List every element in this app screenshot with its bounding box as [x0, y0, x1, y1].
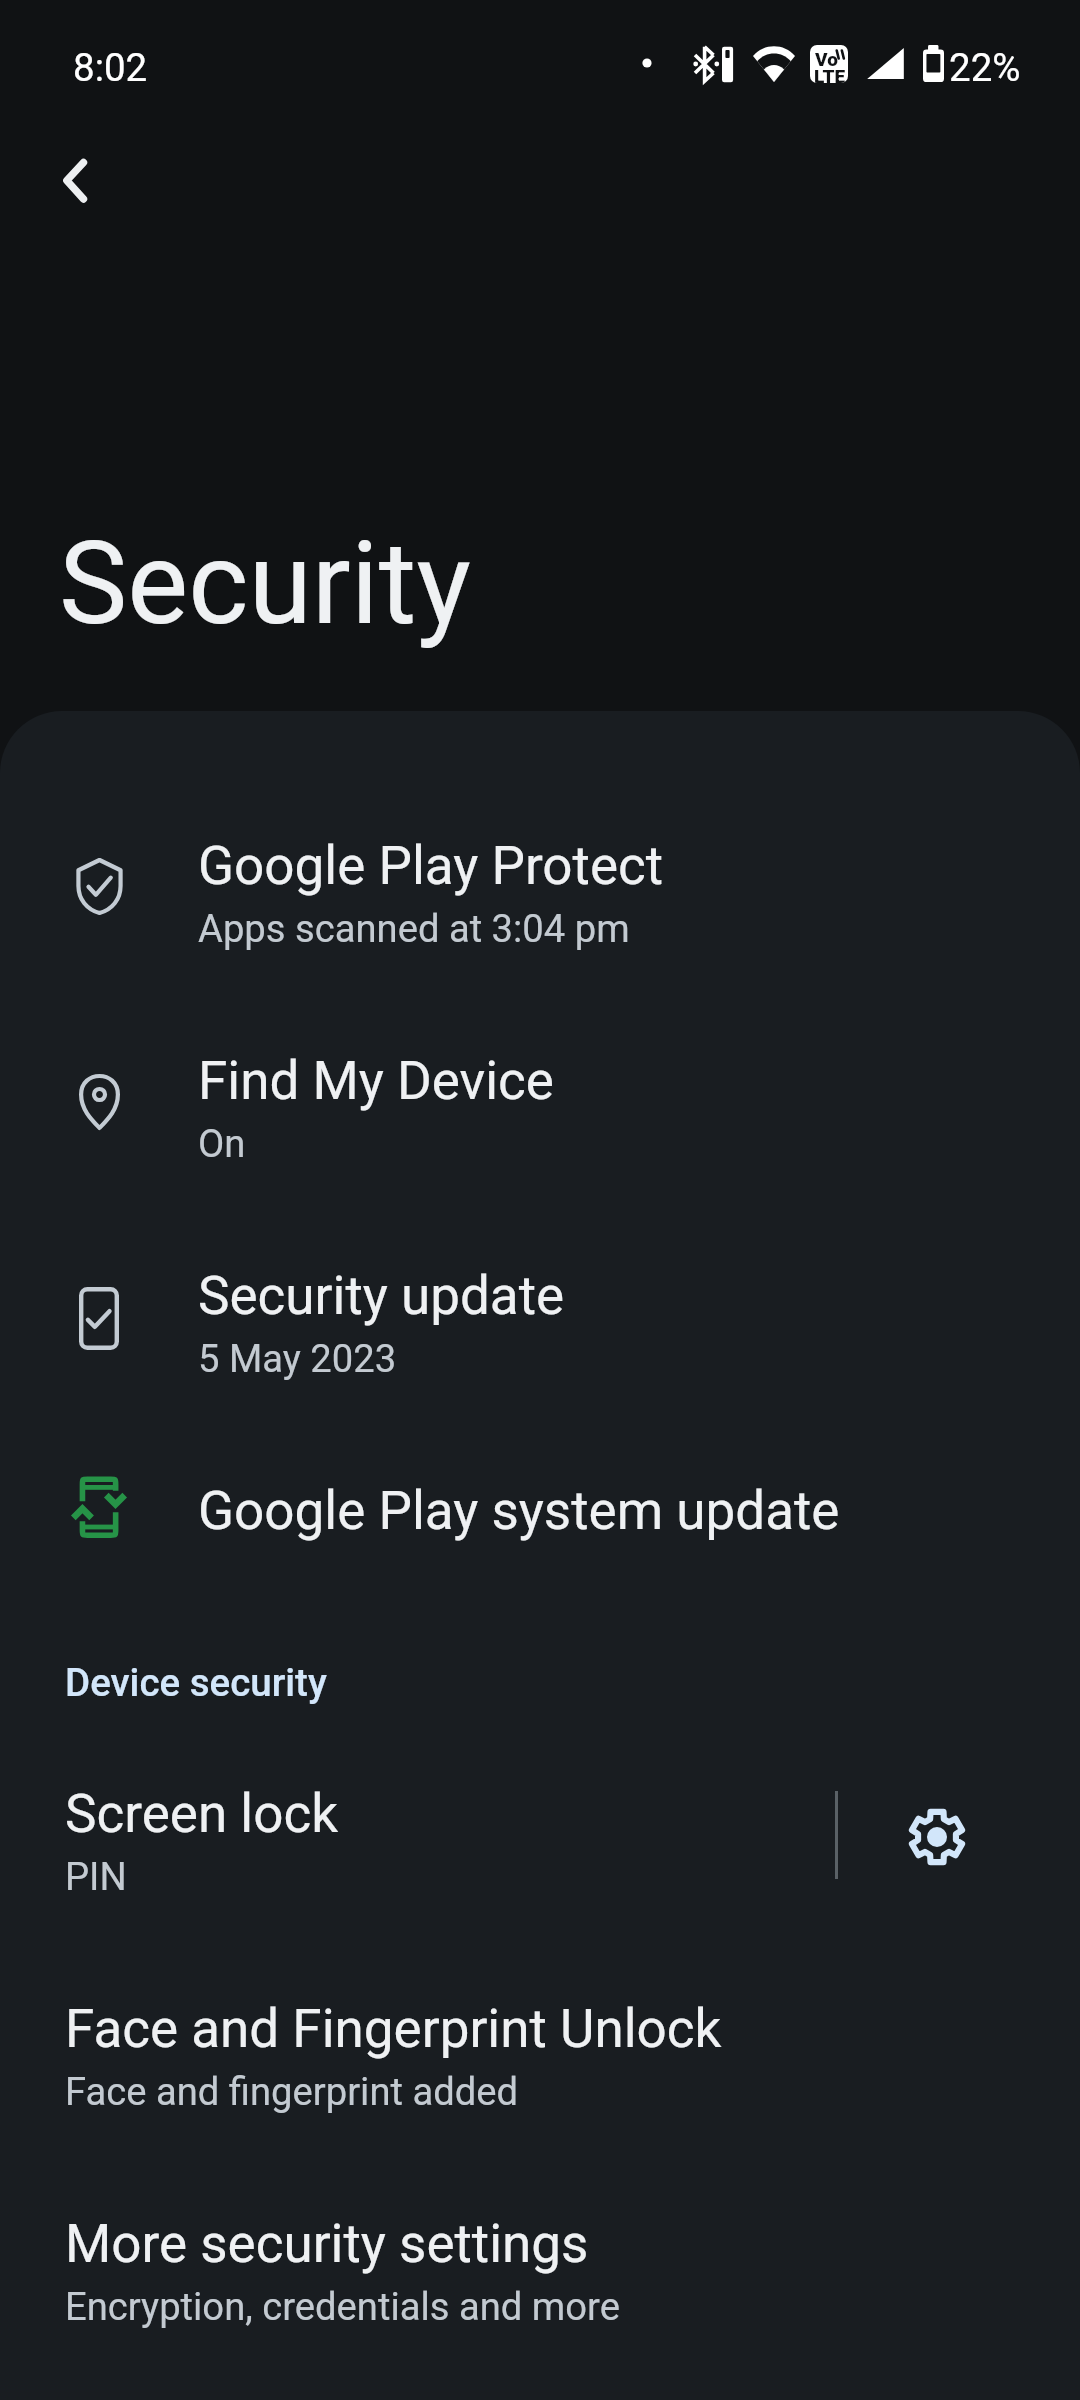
staticText: Face and Fingerprint Unlock: [65, 1998, 722, 2060]
staticText: LTE: [814, 65, 846, 83]
button[interactable]: Face and Fingerprint Unlock: [0, 1956, 1080, 2156]
staticText: Google Play Protect: [198, 835, 664, 897]
button[interactable]: Navigate up: [30, 144, 102, 216]
staticText: Encryption, credentials and more: [65, 2285, 620, 2330]
button[interactable]: Google Play Protect: [0, 798, 1080, 998]
staticText: PIN: [65, 1855, 127, 1900]
staticText: 8:02: [73, 45, 148, 90]
staticText: Google Play system update: [198, 1480, 840, 1542]
staticText: Apps scanned at 3:04 pm: [198, 907, 630, 952]
staticText: On: [198, 1122, 246, 1167]
button[interactable]: Screen lock: [0, 1757, 835, 1917]
staticText: Device security: [65, 1660, 327, 1705]
staticText: More security settings: [65, 2213, 589, 2275]
staticText: Security update: [198, 1265, 565, 1327]
staticText: Vo: [815, 48, 838, 70]
button[interactable]: More security settings: [0, 2171, 1080, 2371]
staticText: Face and fingerprint added: [65, 2070, 519, 2115]
staticText: 22%: [949, 45, 1021, 90]
button[interactable]: Google Play system update: [0, 1443, 1080, 1593]
staticText: Security: [59, 516, 471, 651]
button[interactable]: Security update: [0, 1228, 1080, 1428]
button[interactable]: Find My Device: [0, 1013, 1080, 1213]
staticText: Find My Device: [198, 1050, 554, 1112]
staticText: 5 May 2023: [198, 1337, 397, 1382]
button[interactable]: Screen lock settings: [838, 1757, 1080, 1917]
staticText: Screen lock: [65, 1783, 339, 1845]
